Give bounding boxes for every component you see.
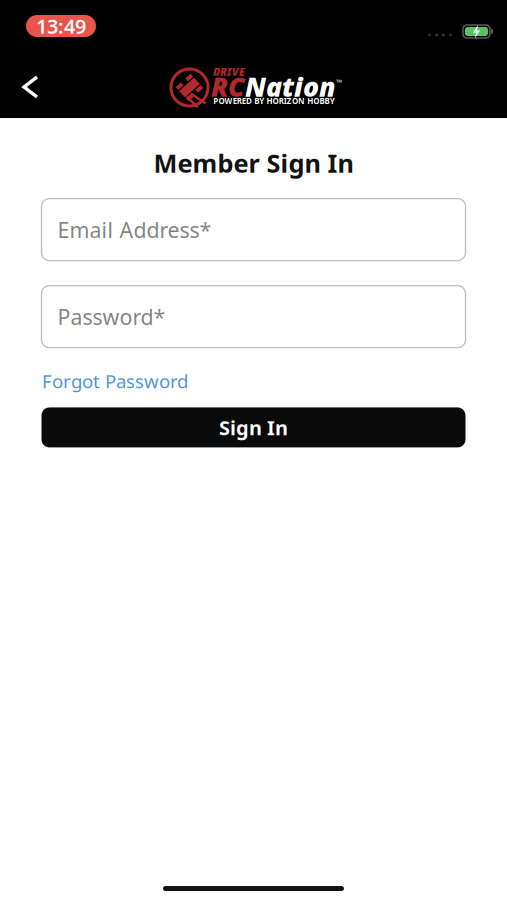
staticText: RC [211,69,245,104]
button[interactable]: Password [41,286,465,348]
staticText: Member Sign In [153,146,353,180]
staticText: DRIVE [213,64,245,79]
button[interactable]: Return to call [26,15,96,37]
staticText: Email Address* [57,215,211,244]
button[interactable]: Email Address [41,199,465,261]
staticText: Sign In [219,414,288,441]
staticText: ™ [336,77,342,88]
staticText: POWERED BY HORIZON HOBBY [213,96,335,106]
staticText: Nation [245,69,336,104]
button[interactable]: Forgot Password [42,369,188,393]
staticText: 13:49 [36,13,86,39]
staticText: Forgot Password [42,369,188,393]
staticText: Password* [57,302,165,331]
button[interactable]: Sign In [41,407,465,447]
button[interactable]: Back [0,58,38,112]
